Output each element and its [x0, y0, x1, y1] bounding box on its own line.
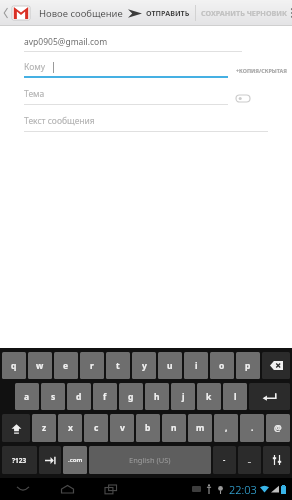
- button[interactable]: avp0905@gmail.com: [0, 36, 292, 52]
- staticText: ,: [225, 422, 228, 434]
- staticText: u: [167, 360, 173, 372]
- button[interactable]: n: [162, 414, 186, 442]
- staticText: z: [42, 422, 47, 434]
- button[interactable]: ,: [214, 414, 238, 442]
- button[interactable]: d: [67, 383, 91, 410]
- button[interactable]: Shift: [2, 414, 30, 442]
- button[interactable]: Attach file: [236, 95, 292, 102]
- button[interactable]: c: [84, 414, 108, 442]
- button[interactable]: b: [136, 414, 160, 442]
- button[interactable]: p: [236, 352, 260, 379]
- staticText: g: [128, 391, 134, 403]
- staticText: b: [145, 422, 151, 434]
- button[interactable]: j: [171, 383, 195, 410]
- staticText: avp0905@gmail.com: [24, 36, 108, 48]
- button[interactable]: Текст сообщения: [0, 115, 292, 132]
- staticText: t: [116, 360, 120, 372]
- button[interactable]: l: [223, 383, 247, 410]
- staticText: j: [182, 391, 185, 403]
- button[interactable]: f: [93, 383, 117, 410]
- button[interactable]: Enter: [249, 383, 290, 410]
- staticText: ОТПРАВИТЬ: [146, 8, 190, 18]
- button[interactable]: @: [266, 414, 290, 442]
- button[interactable]: v: [110, 414, 134, 442]
- button[interactable]: a: [15, 383, 39, 410]
- staticText: r: [90, 360, 94, 372]
- staticText: a: [24, 391, 30, 403]
- staticText: s: [51, 391, 56, 403]
- button[interactable]: Tab: [39, 446, 61, 474]
- staticText: +КОПИЯ/СКРЫТАЯ: [236, 67, 287, 74]
- staticText: Текст сообщения: [24, 115, 95, 127]
- button[interactable]: g: [119, 383, 143, 410]
- staticText: h: [154, 391, 160, 403]
- staticText: Кому: [24, 61, 46, 73]
- button[interactable]: u: [158, 352, 182, 379]
- button[interactable]: y: [132, 352, 156, 379]
- staticText: e: [63, 360, 69, 372]
- staticText: @: [274, 422, 282, 434]
- staticText: English (US): [129, 455, 171, 465]
- staticText: .com: [68, 456, 83, 464]
- button[interactable]: +КОПИЯ/СКРЫТАЯ: [236, 67, 292, 78]
- staticText: _: [248, 455, 251, 465]
- staticText: v: [120, 422, 125, 434]
- staticText: y: [142, 360, 147, 372]
- button[interactable]: .: [240, 414, 264, 442]
- button[interactable]: w: [28, 352, 52, 379]
- staticText: q: [11, 360, 17, 372]
- button[interactable]: h: [145, 383, 169, 410]
- button[interactable]: k: [197, 383, 221, 410]
- staticText: w: [36, 360, 44, 372]
- button[interactable]: ОТПРАВИТЬ: [123, 0, 195, 26]
- button[interactable]: Settings: [263, 446, 290, 474]
- button[interactable]: Back: [6, 478, 40, 500]
- button[interactable]: -: [213, 446, 236, 474]
- button[interactable]: x: [58, 414, 82, 442]
- staticText: .: [251, 422, 254, 434]
- staticText: p: [245, 360, 251, 372]
- button[interactable]: Recent apps: [94, 478, 128, 500]
- button[interactable]: Тема: [0, 88, 236, 105]
- staticText: f: [103, 391, 107, 403]
- button[interactable]: Кому: [0, 61, 236, 78]
- button[interactable]: e: [54, 352, 78, 379]
- staticText: СОХРАНИТЬ ЧЕРНОВИК: [201, 8, 287, 18]
- staticText: n: [171, 422, 177, 434]
- staticText: -: [223, 455, 226, 465]
- button[interactable]: СОХРАНИТЬ ЧЕРНОВИК: [196, 0, 292, 26]
- button[interactable]: t: [106, 352, 130, 379]
- staticText: m: [196, 422, 205, 434]
- button[interactable]: Navigate up: [0, 0, 34, 26]
- button[interactable]: .com: [63, 446, 87, 474]
- button[interactable]: o: [210, 352, 234, 379]
- staticText: c: [94, 422, 99, 434]
- button[interactable]: z: [32, 414, 56, 442]
- staticText: o: [219, 360, 225, 372]
- button[interactable]: q: [2, 352, 26, 379]
- staticText: Новое сообщение: [39, 7, 123, 20]
- staticText: x: [68, 422, 73, 434]
- staticText: i: [195, 360, 198, 372]
- staticText: 22:03: [229, 482, 257, 497]
- button[interactable]: ?123: [2, 446, 37, 474]
- button[interactable]: i: [184, 352, 208, 379]
- button[interactable]: r: [80, 352, 104, 379]
- staticText: k: [206, 391, 212, 403]
- button[interactable]: m: [188, 414, 212, 442]
- staticText: d: [76, 391, 82, 403]
- button[interactable]: s: [41, 383, 65, 410]
- button[interactable]: _: [238, 446, 261, 474]
- staticText: Тема: [24, 88, 45, 100]
- staticText: l: [234, 391, 237, 403]
- button[interactable]: Home: [50, 478, 84, 500]
- button[interactable]: Space: [89, 446, 211, 474]
- button[interactable]: Backspace: [262, 352, 290, 379]
- staticText: ?123: [12, 456, 27, 465]
